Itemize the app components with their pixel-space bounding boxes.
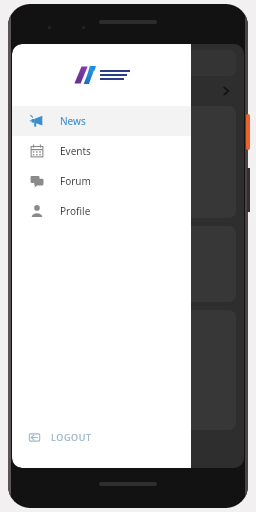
staticText: New RANZCO A	[23, 110, 104, 125]
staticText: clinical guide	[23, 146, 92, 161]
button[interactable]: Events	[12, 136, 191, 166]
staticText: News	[60, 114, 86, 128]
button[interactable]: News	[12, 106, 191, 136]
button[interactable]: Forum	[12, 166, 191, 196]
staticText: Latest Article News	[22, 82, 141, 100]
staticText: LOGOUT	[51, 431, 92, 443]
button[interactable]: Profile	[12, 196, 191, 226]
staticText: Events	[60, 144, 91, 158]
staticText: Australian Medical	[23, 172, 121, 187]
staticText: and practical	[23, 128, 91, 143]
staticText: Profile	[60, 204, 91, 218]
staticText: Forum	[60, 174, 91, 188]
button[interactable]: LOGOUT	[12, 420, 191, 454]
